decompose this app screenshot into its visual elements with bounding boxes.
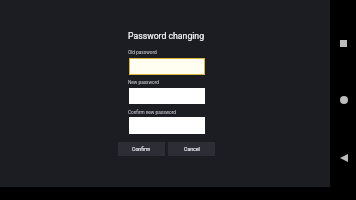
button[interactable]: [129, 58, 205, 75]
button[interactable]: Cancel: [168, 142, 215, 156]
button[interactable]: Home: [330, 87, 356, 113]
button[interactable]: Confirm: [118, 142, 165, 156]
staticText: Old password: [128, 50, 157, 56]
button[interactable]: Back: [330, 145, 356, 171]
button[interactable]: Recent apps: [330, 30, 356, 56]
staticText: New password: [128, 80, 159, 86]
staticText: Confirm new password: [128, 110, 176, 116]
staticText: Cancel: [184, 146, 200, 152]
staticText: Confirm: [132, 146, 151, 152]
staticText: Password changing: [128, 31, 205, 41]
